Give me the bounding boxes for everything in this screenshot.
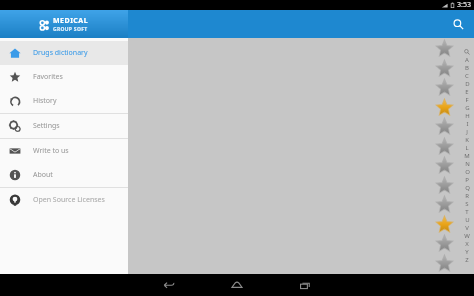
button[interactable]: G [463,104,471,112]
button[interactable]: H [463,112,471,120]
staticText: About [33,170,53,180]
staticText: Drugs dictionary [33,48,88,58]
button[interactable]: Open Source Licenses [0,188,128,212]
button[interactable]: V [463,224,471,232]
button[interactable]: Medical Group Soft [0,10,128,38]
button[interactable]: Favorites [0,65,128,89]
button[interactable]: K [463,136,471,144]
button[interactable]: O [463,168,471,176]
staticText: MEDICAL [53,16,89,26]
staticText: N [465,160,470,168]
staticText: Z [465,256,469,264]
button[interactable]: Home [222,274,252,296]
staticText: L [465,144,469,152]
staticText: GROUP SOFT [53,26,88,33]
button[interactable]: Back [154,274,184,296]
staticText: Y [465,248,469,256]
staticText: B [465,64,469,72]
staticText: O [465,168,470,176]
button[interactable]: J [463,128,471,136]
button[interactable]: S [463,200,471,208]
staticText: C [465,72,469,80]
staticText: Favorites [33,72,63,82]
staticText: T [465,208,469,216]
button[interactable]: X [463,240,471,248]
staticText: History [33,96,57,106]
button[interactable]: C [463,72,471,80]
staticText: Write to us [33,146,69,156]
staticText: D [465,80,470,88]
button[interactable]: W [463,232,471,240]
button[interactable]: A [463,56,471,64]
staticText: K [465,136,469,144]
staticText: 3:53 [457,0,471,10]
button[interactable]: Z [463,256,471,264]
button[interactable]: Search [448,14,468,34]
staticText: R [465,192,469,200]
button[interactable]: E [463,88,471,96]
button[interactable]: U [463,216,471,224]
button[interactable]: Write to us [0,139,128,163]
button[interactable]: History [0,89,128,113]
staticText: J [466,128,468,136]
button[interactable]: Search index [463,48,471,56]
staticText: W [464,232,470,240]
button[interactable]: M [463,152,471,160]
staticText: I [466,120,469,128]
staticText: F [465,96,469,104]
button[interactable]: Settings [0,114,128,138]
staticText: X [465,240,469,248]
staticText: P [465,176,469,184]
button[interactable]: About [0,163,128,187]
staticText: U [465,216,470,224]
staticText: S [465,200,469,208]
button[interactable]: R [463,192,471,200]
button[interactable]: Q [463,184,471,192]
button[interactable]: L [463,144,471,152]
staticText: H [465,112,470,120]
button[interactable]: Drugs dictionary [0,41,128,65]
button[interactable]: P [463,176,471,184]
button[interactable]: I [463,120,471,128]
button[interactable]: F [463,96,471,104]
button[interactable]: B [463,64,471,72]
staticText: G [465,104,470,112]
staticText: M [464,152,470,160]
staticText: Q [465,184,470,192]
button[interactable]: Y [463,248,471,256]
button[interactable]: Recent apps [290,274,320,296]
staticText: V [465,224,469,232]
button[interactable]: T [463,208,471,216]
staticText: E [465,88,469,96]
button[interactable]: N [463,160,471,168]
staticText: Settings [33,121,60,131]
staticText: A [465,56,469,64]
staticText: Open Source Licenses [33,195,105,205]
button[interactable]: D [463,80,471,88]
